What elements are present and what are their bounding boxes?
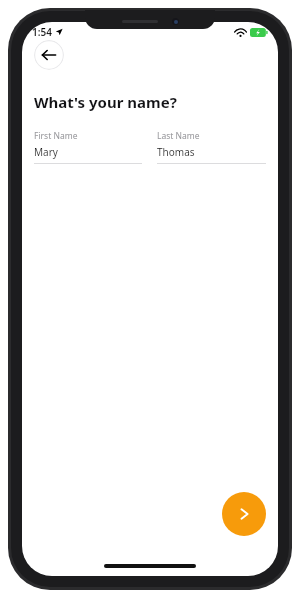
button[interactable]: First Name — [34, 130, 142, 164]
staticText: What's your name? — [34, 92, 177, 112]
staticText: First Name — [34, 130, 78, 142]
staticText: Mary — [34, 145, 58, 159]
button[interactable]: Last Name — [157, 130, 266, 164]
staticText: Last Name — [157, 130, 200, 142]
staticText: 1:54 — [32, 25, 52, 39]
button[interactable]: Next — [222, 492, 266, 536]
button[interactable]: Back — [34, 40, 64, 70]
staticText: Thomas — [157, 145, 195, 159]
